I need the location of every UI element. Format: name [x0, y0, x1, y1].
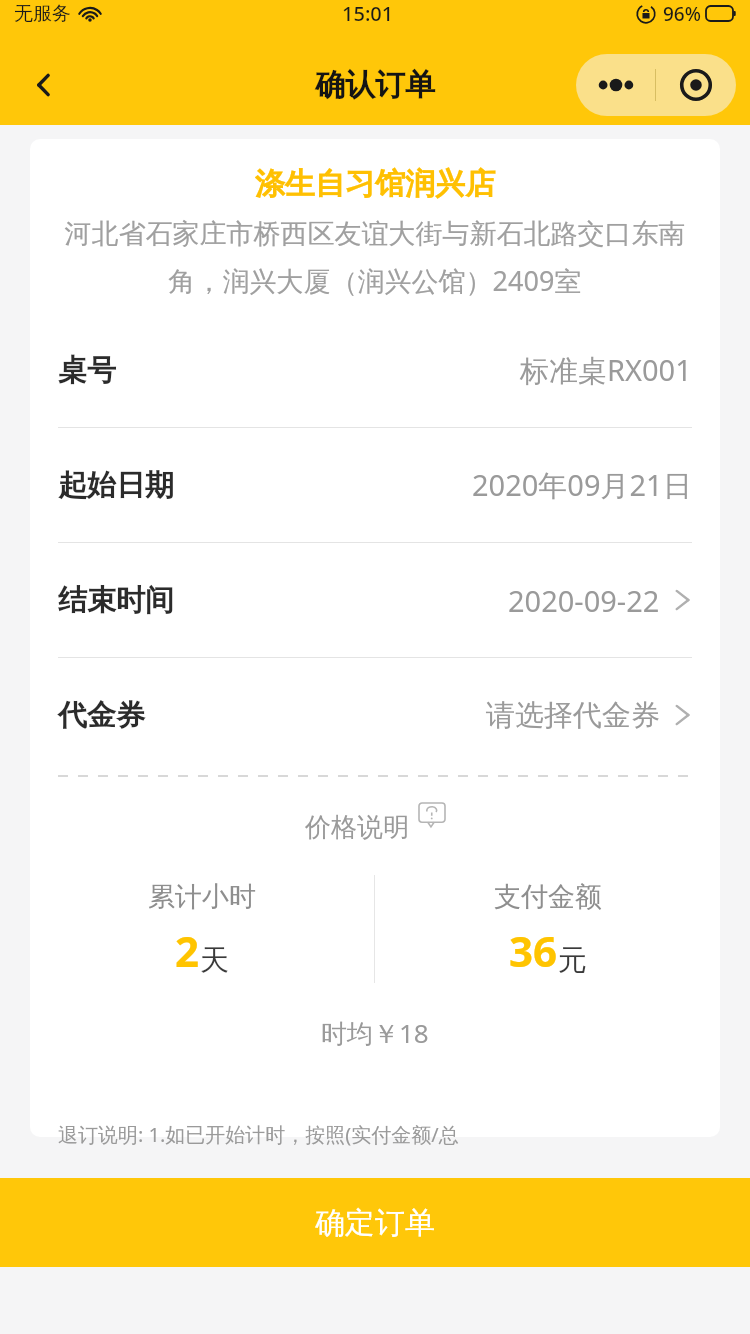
staticText: 涤生自习馆润兴店: [255, 165, 495, 203]
staticText: 2020年09月21日: [472, 465, 692, 505]
button[interactable]: 桌号: [30, 313, 720, 427]
staticText: 价格说明: [305, 811, 409, 844]
staticText: 96%: [663, 1, 701, 27]
staticText: 代金券: [58, 697, 145, 734]
staticText: 桌号: [58, 352, 116, 389]
staticText: 确定订单: [315, 1204, 435, 1242]
staticText: 36: [509, 922, 558, 979]
staticText: 退订说明: 1.如已开始计时，按照(实付金额/总: [58, 1121, 459, 1148]
staticText: 天: [200, 942, 229, 979]
staticText: 起始日期: [58, 467, 174, 504]
staticText: 时均￥18: [321, 1015, 429, 1051]
staticText: 累计小时: [148, 880, 256, 914]
staticText: 标准桌RX001: [520, 350, 692, 390]
staticText: 请选择代金券: [486, 697, 660, 734]
staticText: 2: [175, 922, 200, 979]
staticText: 河北省石家庄市桥西区友谊大街与新石北路交口东南角，润兴大厦（润兴公馆）2409室: [40, 217, 710, 299]
staticText: 结束时间: [58, 582, 174, 619]
button[interactable]: 结束时间: [30, 543, 720, 657]
staticText: 2020-09-22: [508, 581, 660, 620]
staticText: 支付金额: [494, 880, 602, 914]
button[interactable]: 价格说明: [30, 803, 720, 851]
button[interactable]: 起始日期: [30, 428, 720, 542]
staticText: 无服务: [14, 2, 71, 26]
staticText: 确认订单: [315, 66, 435, 104]
button[interactable]: Back: [14, 55, 74, 115]
staticText: 元: [558, 942, 587, 979]
button[interactable]: 确定订单: [0, 1178, 750, 1267]
staticText: 15:01: [342, 0, 394, 27]
button[interactable]: Close: [656, 54, 736, 116]
button[interactable]: More: [576, 54, 655, 116]
button[interactable]: 代金券: [30, 658, 720, 772]
